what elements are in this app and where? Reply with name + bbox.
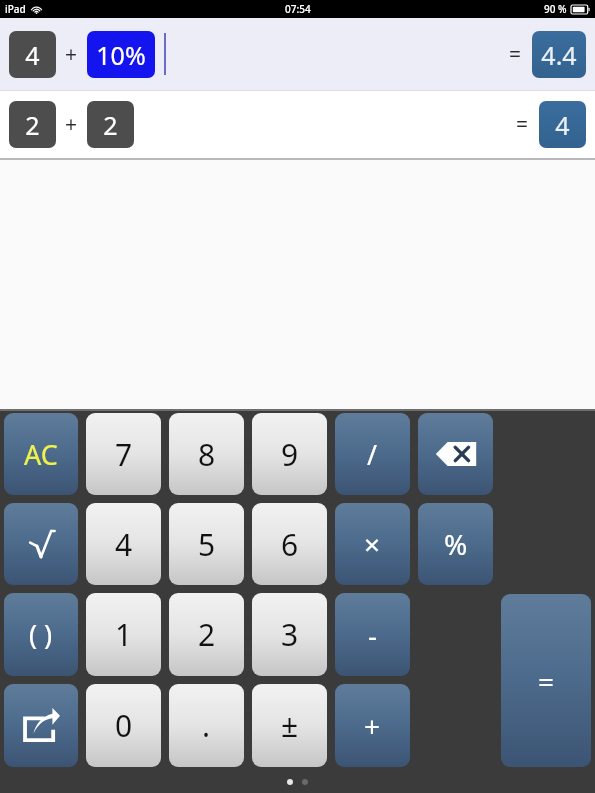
staticText: = (538, 662, 555, 700)
button[interactable]: 9 (252, 413, 327, 495)
staticText: 4 (115, 524, 133, 565)
staticText: - (368, 616, 378, 654)
button[interactable]: 0 (86, 684, 161, 767)
staticText: 1 (115, 614, 133, 655)
button[interactable]: 4.4 (532, 31, 586, 78)
staticText: 90 % (544, 2, 567, 16)
button[interactable]: 8 (169, 413, 244, 495)
button[interactable]: + (335, 684, 410, 767)
staticText: + (364, 707, 381, 745)
button[interactable]: = (501, 594, 591, 767)
button[interactable]: - (335, 593, 410, 676)
staticText: 6 (281, 524, 299, 565)
staticText: ± (281, 705, 299, 746)
staticText: = (516, 110, 529, 139)
button[interactable]: 3 (252, 593, 327, 676)
staticText: 8 (198, 434, 216, 475)
staticText: 5 (198, 524, 216, 565)
button[interactable]: 4 (9, 31, 56, 78)
staticText: + (65, 40, 78, 69)
staticText: 3 (281, 614, 299, 655)
button[interactable]: × (335, 503, 410, 585)
button[interactable]: 10% (87, 31, 155, 78)
button[interactable]: 2 (9, 101, 56, 148)
staticText: 10% (96, 38, 146, 72)
button[interactable]: / (335, 413, 410, 495)
button[interactable]: 1 (86, 593, 161, 676)
staticText: iPad (5, 2, 26, 16)
staticText: 7 (115, 434, 133, 475)
staticText: % (444, 525, 468, 563)
staticText: 4.4 (541, 38, 577, 72)
staticText: / (367, 436, 378, 473)
button[interactable]: 4 (86, 503, 161, 585)
staticText: ( ) (29, 616, 53, 653)
button[interactable]: Backspace (418, 413, 493, 495)
staticText: 2 (103, 108, 118, 142)
staticText: AC (24, 436, 58, 473)
staticText: 4 (555, 108, 570, 142)
staticText: 0 (115, 705, 133, 746)
button[interactable]: ( ) (4, 593, 78, 676)
staticText: = (509, 40, 522, 69)
staticText: 2 (198, 614, 216, 655)
button[interactable]: 5 (169, 503, 244, 585)
staticText: + (65, 110, 78, 139)
button[interactable]: Share (4, 684, 78, 767)
button[interactable]: . (169, 684, 244, 767)
button[interactable]: 2 (169, 593, 244, 676)
button[interactable]: 2 (87, 101, 134, 148)
staticText: 9 (281, 434, 299, 475)
button[interactable]: ± (252, 684, 327, 767)
button[interactable]: 4 (539, 101, 586, 148)
button[interactable]: 4 (0, 18, 595, 90)
staticText: 2 (25, 108, 40, 142)
button[interactable]: 6 (252, 503, 327, 585)
staticText: × (364, 525, 381, 563)
staticText: . (202, 705, 211, 746)
button[interactable]: % (418, 503, 493, 585)
button[interactable]: 7 (86, 413, 161, 495)
button[interactable]: AC (4, 413, 78, 495)
staticText: 4 (25, 38, 40, 72)
staticText: 07:54 (285, 2, 311, 16)
button[interactable]: 2 (0, 91, 595, 158)
button[interactable]: Square root (4, 503, 78, 585)
